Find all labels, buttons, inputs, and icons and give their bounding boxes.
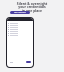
button[interactable] <box>8 24 33 26</box>
staticText: Silent & overnight your credentials in o… <box>13 1 51 13</box>
button[interactable] <box>8 30 33 32</box>
button[interactable] <box>8 28 33 30</box>
button[interactable] <box>8 22 33 24</box>
button[interactable]: Continue <box>26 61 31 63</box>
button[interactable] <box>8 32 33 34</box>
staticText: Get started <box>14 11 26 14</box>
button[interactable] <box>8 34 33 36</box>
button[interactable] <box>8 26 33 28</box>
button[interactable]: Get started <box>10 11 30 14</box>
